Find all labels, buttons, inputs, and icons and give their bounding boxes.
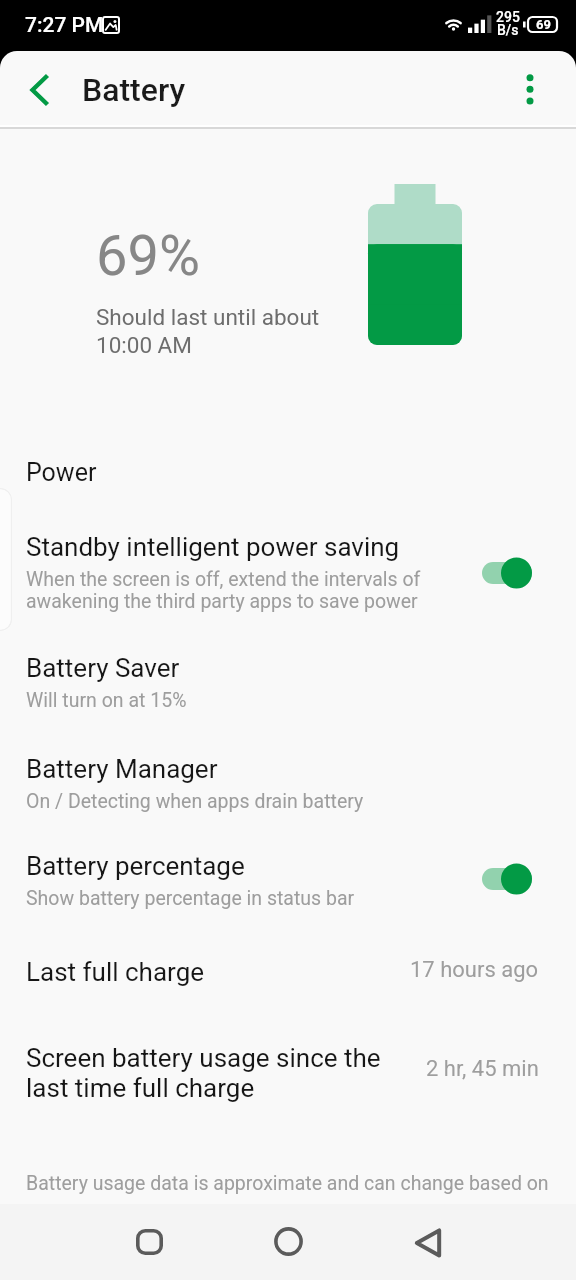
staticText: When the screen is off, extend the inter…	[26, 568, 421, 613]
button[interactable]: Battery Manager	[0, 742, 576, 820]
staticText: Battery Saver	[26, 653, 180, 683]
staticText: 69	[536, 17, 551, 32]
staticText: B/s	[497, 22, 519, 38]
button[interactable]: Recent apps	[129, 1222, 169, 1262]
staticText: On / Detecting when apps drain battery	[26, 790, 364, 813]
staticText: Last full charge	[26, 957, 205, 987]
button[interactable]: More options	[502, 60, 558, 116]
staticText: Battery percentage	[26, 851, 245, 881]
staticText: Battery	[82, 71, 186, 109]
staticText: 17 hours ago	[410, 957, 539, 983]
button[interactable]: Battery Saver	[0, 641, 576, 719]
button[interactable]: Home	[268, 1221, 308, 1261]
button[interactable]: Standby intelligent power saving	[0, 520, 576, 622]
staticText: Screen battery usage since the last time…	[26, 1043, 381, 1103]
staticText: Battery usage data is approximate and ca…	[26, 1172, 549, 1195]
button[interactable]: Screen battery usage since the last time…	[0, 1031, 576, 1127]
staticText: 69%	[96, 223, 200, 289]
button[interactable]: Battery percentage	[0, 839, 576, 917]
staticText: Will turn on at 15%	[26, 689, 187, 712]
button[interactable]: Toggle Standby intelligent power saving	[472, 552, 544, 594]
staticText: 7:27 PM	[25, 13, 104, 38]
button[interactable]: Back	[10, 60, 66, 116]
staticText: Power	[26, 458, 97, 487]
staticText: Battery Manager	[26, 754, 218, 784]
staticText: 2 hr, 45 min	[426, 1056, 539, 1082]
staticText: Standby intelligent power saving	[26, 532, 400, 562]
staticText: 295	[496, 9, 520, 25]
button[interactable]: Back	[408, 1223, 448, 1263]
staticText: Show battery percentage in status bar	[26, 887, 355, 910]
button[interactable]: Last full charge	[0, 945, 576, 1008]
staticText: Should last until about 10:00 AM	[96, 304, 320, 359]
button[interactable]: Toggle Battery percentage	[472, 858, 544, 900]
